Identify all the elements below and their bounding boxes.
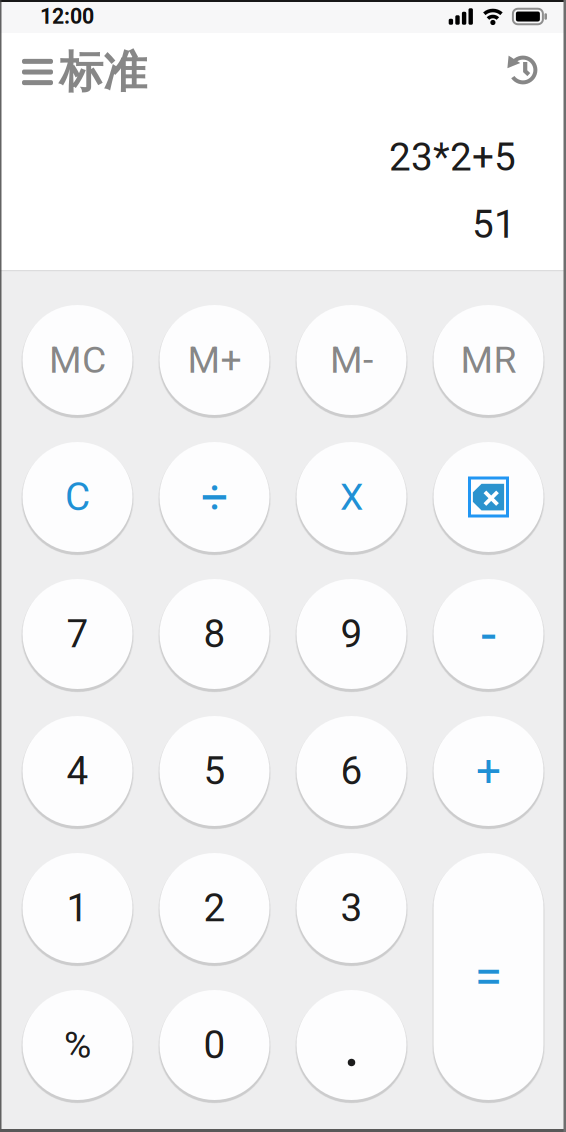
staticText: 7 [66,611,88,657]
staticText: 5 [203,748,225,794]
staticText: 23*2+5 [389,135,516,180]
staticText: = [474,947,502,1006]
staticText: 标准 [59,45,147,99]
staticText: 9 [340,611,362,657]
button[interactable]: 2 [159,853,269,963]
staticText: - [481,603,496,667]
staticText: 12:00 [40,4,94,29]
staticText: ÷ [201,469,228,525]
staticText: M- [330,338,373,382]
button[interactable]: History [501,50,566,94]
button[interactable]: 7 [22,579,132,689]
staticText: 3 [340,885,362,931]
staticText: MR [460,338,516,382]
button[interactable]: 5 [159,716,269,826]
button[interactable]: C [22,442,132,552]
button[interactable]: 9 [296,579,406,689]
button[interactable]: 4 [22,716,132,826]
button[interactable]: Menu [0,51,53,93]
staticText: 4 [66,748,88,794]
staticText: 1 [66,885,88,931]
button[interactable]: X [296,442,406,552]
staticText: 2 [203,885,225,931]
button[interactable]: Backspace [433,442,543,552]
button[interactable]: 0 [159,990,269,1100]
button[interactable]: M- [296,305,406,415]
button[interactable]: MC [22,305,132,415]
staticText: % [64,1023,91,1067]
button[interactable]: 6 [296,716,406,826]
staticText: 0 [203,1022,225,1068]
staticText: MC [49,338,106,382]
button[interactable]: + [433,716,543,826]
button[interactable]: Equals [433,853,543,1100]
staticText: 51 [472,202,516,247]
button[interactable]: 8 [159,579,269,689]
button[interactable]: MR [433,305,543,415]
staticText: + [476,745,501,797]
staticText: M+ [187,338,241,382]
button[interactable]: ÷ [159,442,269,552]
button[interactable]: % [22,990,132,1100]
staticText: C [65,474,90,520]
button[interactable]: 1 [22,853,132,963]
button[interactable]: M+ [159,305,269,415]
staticText: 8 [203,611,225,657]
staticText: 6 [340,748,362,794]
button[interactable]: Decimal point [296,990,406,1100]
staticText: X [340,475,363,519]
button[interactable]: 3 [296,853,406,963]
button[interactable]: - [433,579,543,689]
